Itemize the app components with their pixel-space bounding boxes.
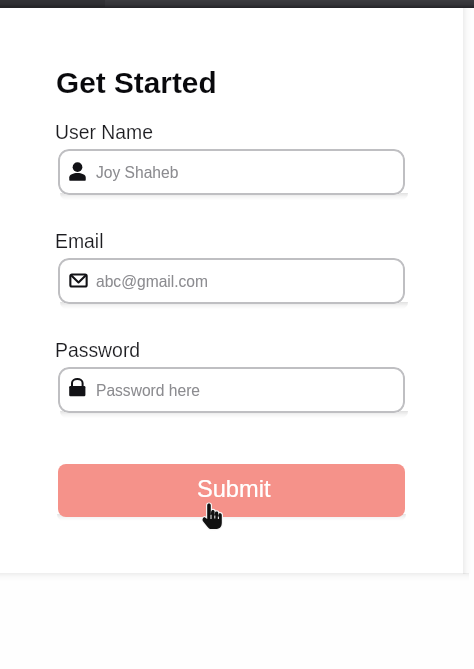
staticText: Get Started — [56, 66, 217, 99]
other: Email — [69, 270, 86, 292]
button[interactable]: Email — [58, 258, 405, 304]
staticText: Email — [55, 230, 104, 252]
staticText: Submit — [197, 476, 271, 502]
other: Password — [69, 379, 86, 401]
button[interactable]: User — [58, 149, 405, 195]
staticText: Password here — [96, 382, 201, 399]
staticText: Joy Shaheb — [96, 164, 179, 181]
staticText: abc@gmail.com — [96, 273, 209, 290]
button[interactable]: Password — [58, 367, 405, 413]
button[interactable]: Submit — [58, 464, 405, 517]
staticText: User Name — [55, 121, 154, 143]
other: User — [69, 161, 86, 183]
staticText: Password — [55, 339, 141, 361]
